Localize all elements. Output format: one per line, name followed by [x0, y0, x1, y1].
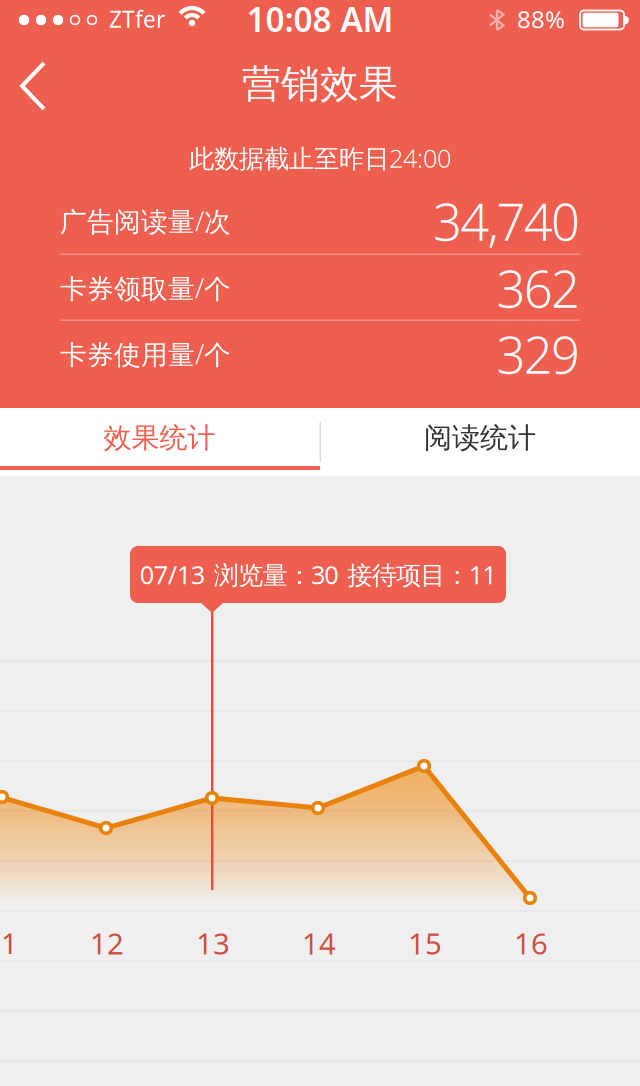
- staticText: 卡券领取量/个: [60, 270, 231, 306]
- staticText: ZTfer: [109, 4, 165, 34]
- staticText: 10:08 AM: [246, 0, 393, 41]
- staticText: 12: [90, 923, 124, 962]
- staticText: 07/13: [140, 558, 205, 591]
- staticText: 效果统计: [103, 421, 215, 455]
- staticText: 88%: [517, 3, 565, 35]
- staticText: 329: [497, 320, 580, 388]
- staticText: 13: [196, 923, 230, 962]
- staticText: 16: [514, 923, 548, 962]
- staticText: 14: [302, 923, 336, 962]
- button[interactable]: 07/13: [130, 546, 506, 603]
- button[interactable]: 阅读统计: [320, 408, 639, 468]
- staticText: 11: [0, 923, 18, 962]
- staticText: 362: [497, 254, 580, 322]
- staticText: 15: [408, 923, 442, 962]
- button[interactable]: 效果统计: [0, 408, 319, 468]
- staticText: 此数据截止至昨日24:00: [189, 141, 451, 175]
- staticText: 浏览量：30: [214, 558, 338, 591]
- staticText: 34,740: [433, 187, 580, 255]
- staticText: 广告阅读量/次: [60, 203, 231, 239]
- staticText: 营销效果: [242, 60, 398, 108]
- staticText: 阅读统计: [424, 421, 536, 455]
- staticText: 卡券使用量/个: [60, 336, 231, 372]
- button[interactable]: Back: [0, 0, 66, 132]
- staticText: 接待项目：11: [347, 558, 496, 591]
